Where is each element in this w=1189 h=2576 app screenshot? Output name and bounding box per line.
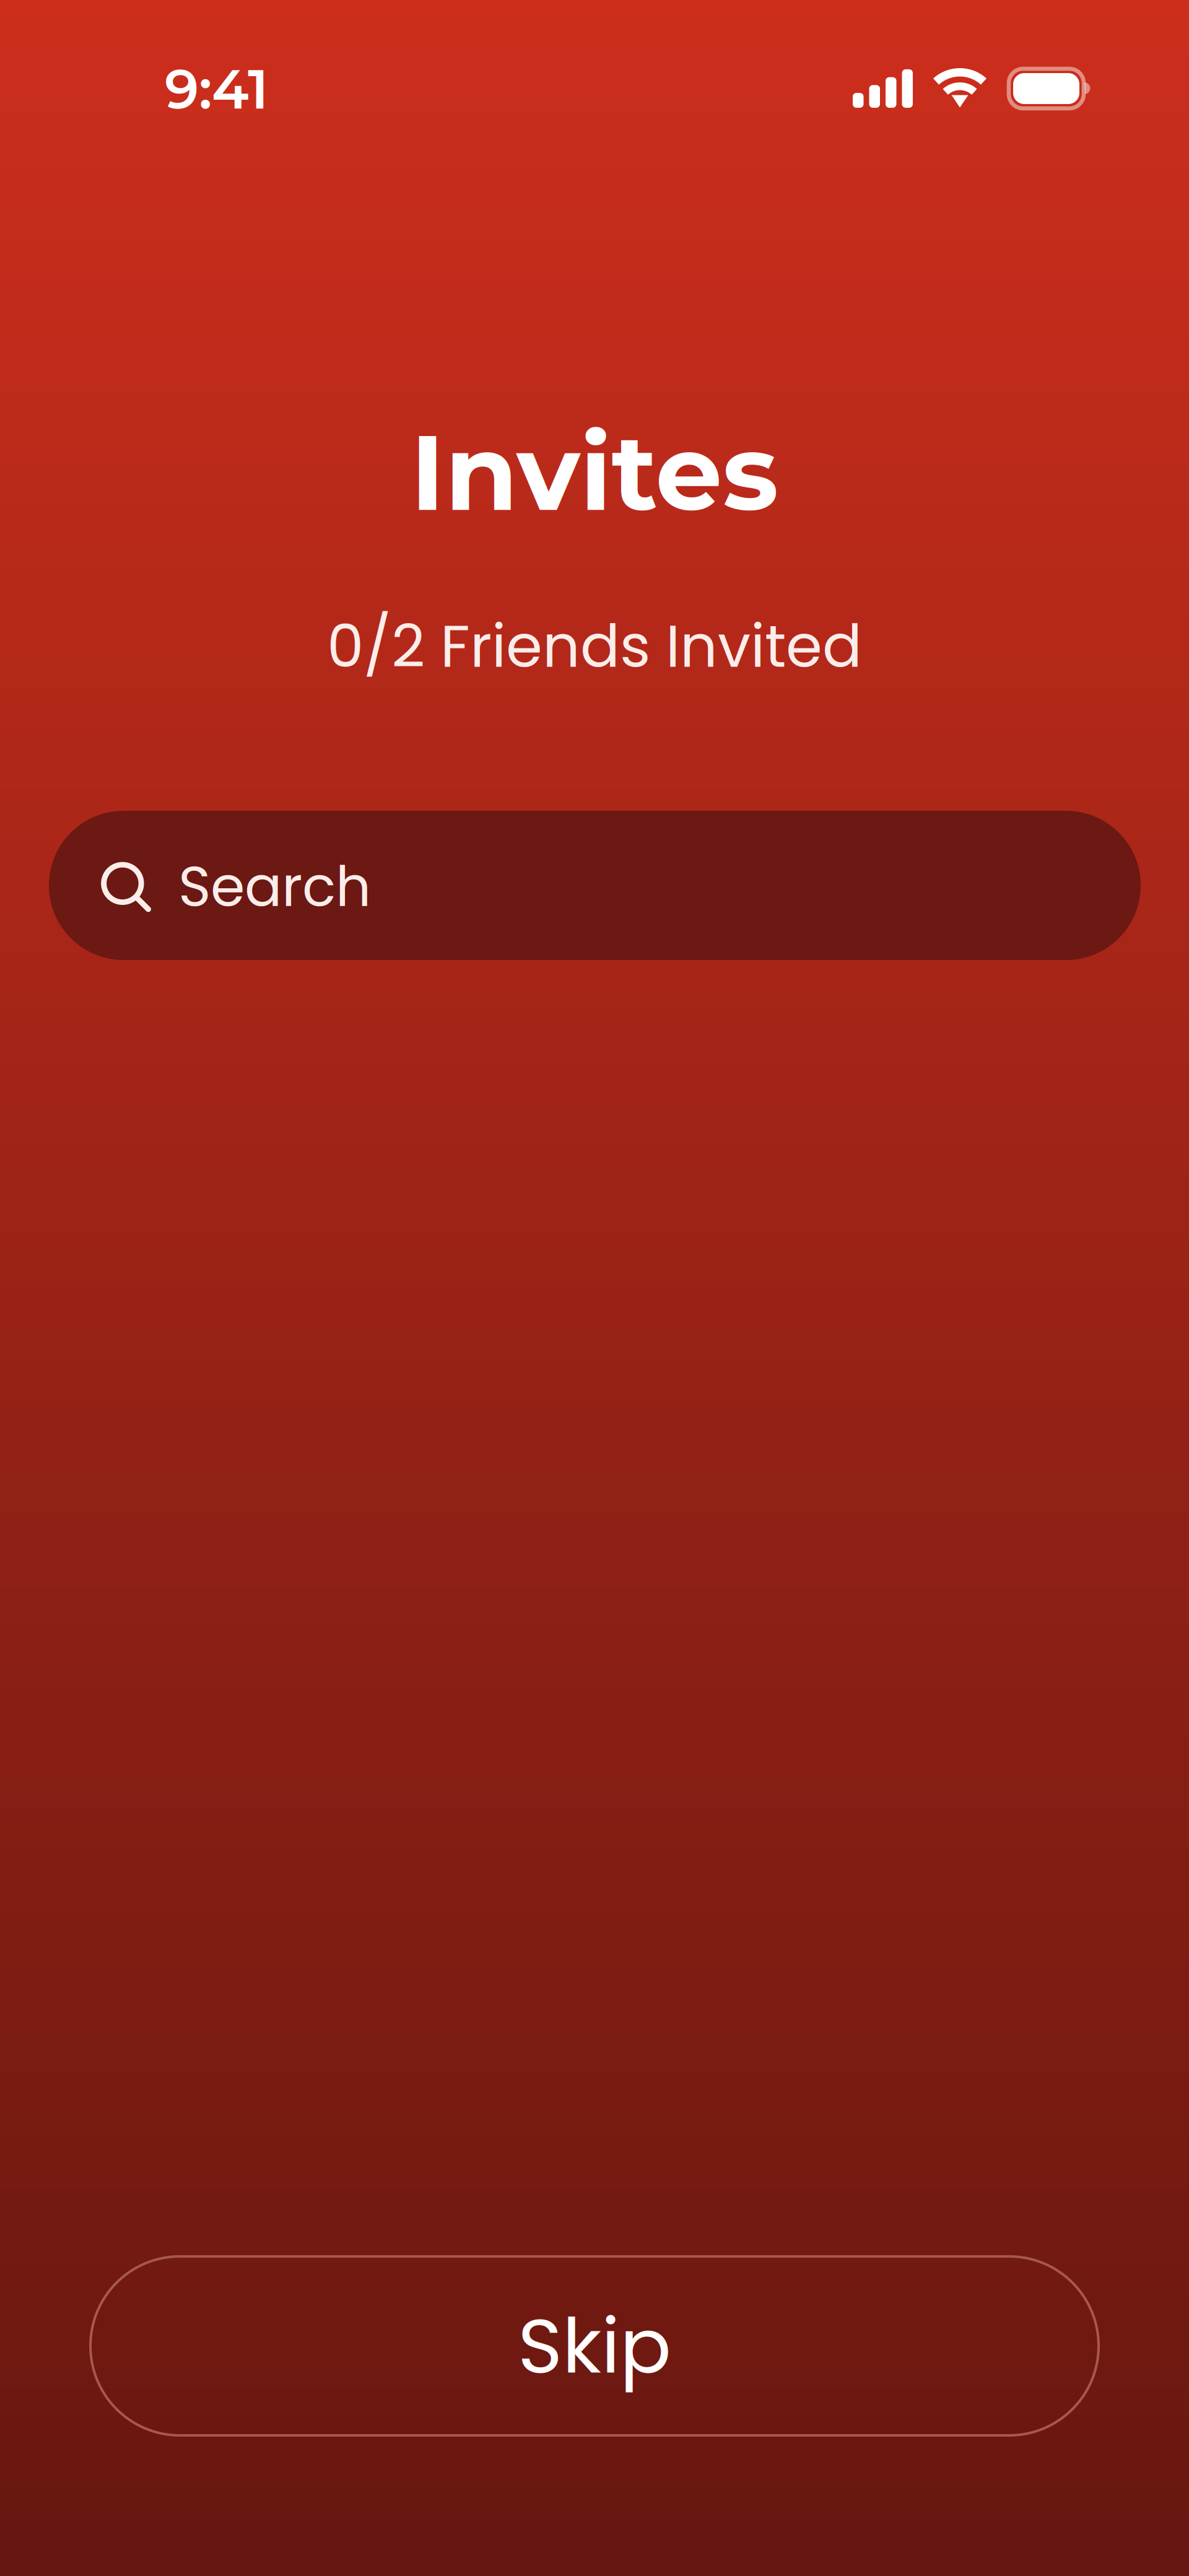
staticText: Search [178, 848, 371, 925]
staticText: 0/2 Friends Invited [327, 605, 862, 687]
staticText: Skip [518, 2293, 671, 2399]
button[interactable]: Search [49, 811, 1141, 960]
button[interactable]: Skip [90, 2256, 1099, 2435]
staticText: 9:41 [165, 56, 269, 122]
staticText: Invites [410, 408, 779, 536]
